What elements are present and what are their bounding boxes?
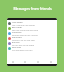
staticText: Sounds good to me, thanks <box>12 34 38 36</box>
button[interactable]: Dan Evans <box>7 36 57 41</box>
staticText: Ben Carter <box>12 26 23 29</box>
button[interactable]: Ben Carter <box>7 26 57 31</box>
staticText: Clara Diaz <box>12 31 22 34</box>
button[interactable]: Alice Green <box>7 21 57 26</box>
staticText: Dan Evans <box>12 36 22 39</box>
staticText: Messages from friends <box>13 6 52 11</box>
staticText: Hey, how are you doing? <box>12 24 35 26</box>
button[interactable]: Tab 3 <box>44 59 57 64</box>
staticText: Erin Fox <box>12 41 20 44</box>
button[interactable]: Finn Gray <box>7 46 57 51</box>
staticText: Thanks a lot for the help <box>12 39 35 41</box>
button[interactable]: Tab 1 <box>19 59 31 64</box>
staticText: On my way to the office <box>12 44 35 46</box>
button[interactable]: Tab 2 <box>31 59 44 64</box>
button[interactable]: Clara Diaz <box>7 31 57 36</box>
button[interactable]: Erin Fox <box>7 41 57 46</box>
staticText: See you tomorrow morning <box>12 29 38 31</box>
staticText: Finn Gray <box>12 46 21 49</box>
button[interactable]: Tab 0 <box>7 59 19 64</box>
staticText: Call me when you can <box>12 49 33 51</box>
staticText: Alice Green <box>12 21 23 24</box>
